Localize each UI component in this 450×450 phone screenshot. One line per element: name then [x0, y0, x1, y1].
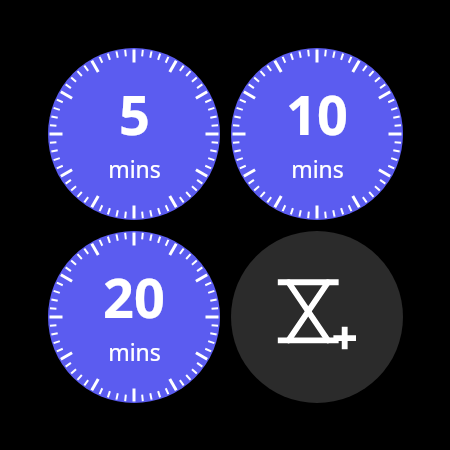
staticText: 20 [103, 260, 165, 334]
button[interactable]: Add timer [231, 231, 403, 403]
staticText: 10 [286, 77, 348, 151]
staticText: mins [291, 153, 344, 184]
staticText: mins [108, 336, 161, 367]
staticText: 5 [119, 77, 150, 151]
button[interactable]: 5 [48, 48, 220, 220]
button[interactable]: 20 [48, 231, 220, 403]
button[interactable]: 10 [231, 48, 403, 220]
staticText: mins [108, 153, 161, 184]
